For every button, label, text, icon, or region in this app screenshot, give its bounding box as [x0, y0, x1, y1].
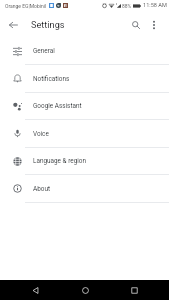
button[interactable]: Home: [70, 280, 100, 300]
staticText: Voice: [33, 130, 49, 138]
button[interactable]: About: [0, 175, 169, 203]
button[interactable]: Search: [129, 18, 142, 31]
staticText: Orange EG|Mobinil: [5, 3, 47, 9]
staticText: Settings: [31, 19, 65, 30]
button[interactable]: General: [0, 38, 169, 65]
button[interactable]: More options: [142, 13, 166, 37]
button[interactable]: Back: [20, 280, 50, 300]
staticText: 88%: [122, 3, 132, 9]
staticText: Google Assistant: [33, 102, 82, 110]
button[interactable]: Back: [0, 11, 27, 38]
staticText: Language & region: [33, 157, 86, 165]
button[interactable]: Notifications: [0, 65, 169, 93]
button[interactable]: Google Assistant: [0, 93, 169, 120]
button[interactable]: Voice: [0, 120, 169, 148]
button[interactable]: Recents: [119, 280, 149, 300]
staticText: About: [33, 185, 51, 193]
button[interactable]: Language & region: [0, 148, 169, 175]
staticText: Notifications: [33, 75, 70, 83]
staticText: General: [33, 47, 55, 55]
staticText: 11:58 AM: [143, 2, 167, 9]
